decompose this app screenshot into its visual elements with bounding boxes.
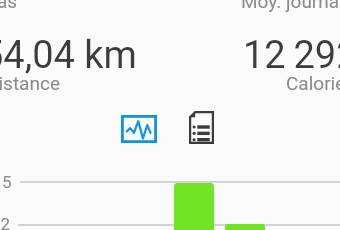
staticText: Calories <box>286 72 340 94</box>
button[interactable]: Details list <box>189 111 215 145</box>
staticText: Pas <box>0 0 18 12</box>
staticText: 5 <box>2 172 12 192</box>
staticText: 54,04 km <box>0 33 137 78</box>
staticText: Moy. journalière <box>241 0 340 12</box>
button[interactable]: Activity graph <box>121 115 157 143</box>
staticText: 12 292 <box>243 33 340 78</box>
staticText: Distance <box>0 72 60 94</box>
staticText: 72 <box>0 214 11 230</box>
